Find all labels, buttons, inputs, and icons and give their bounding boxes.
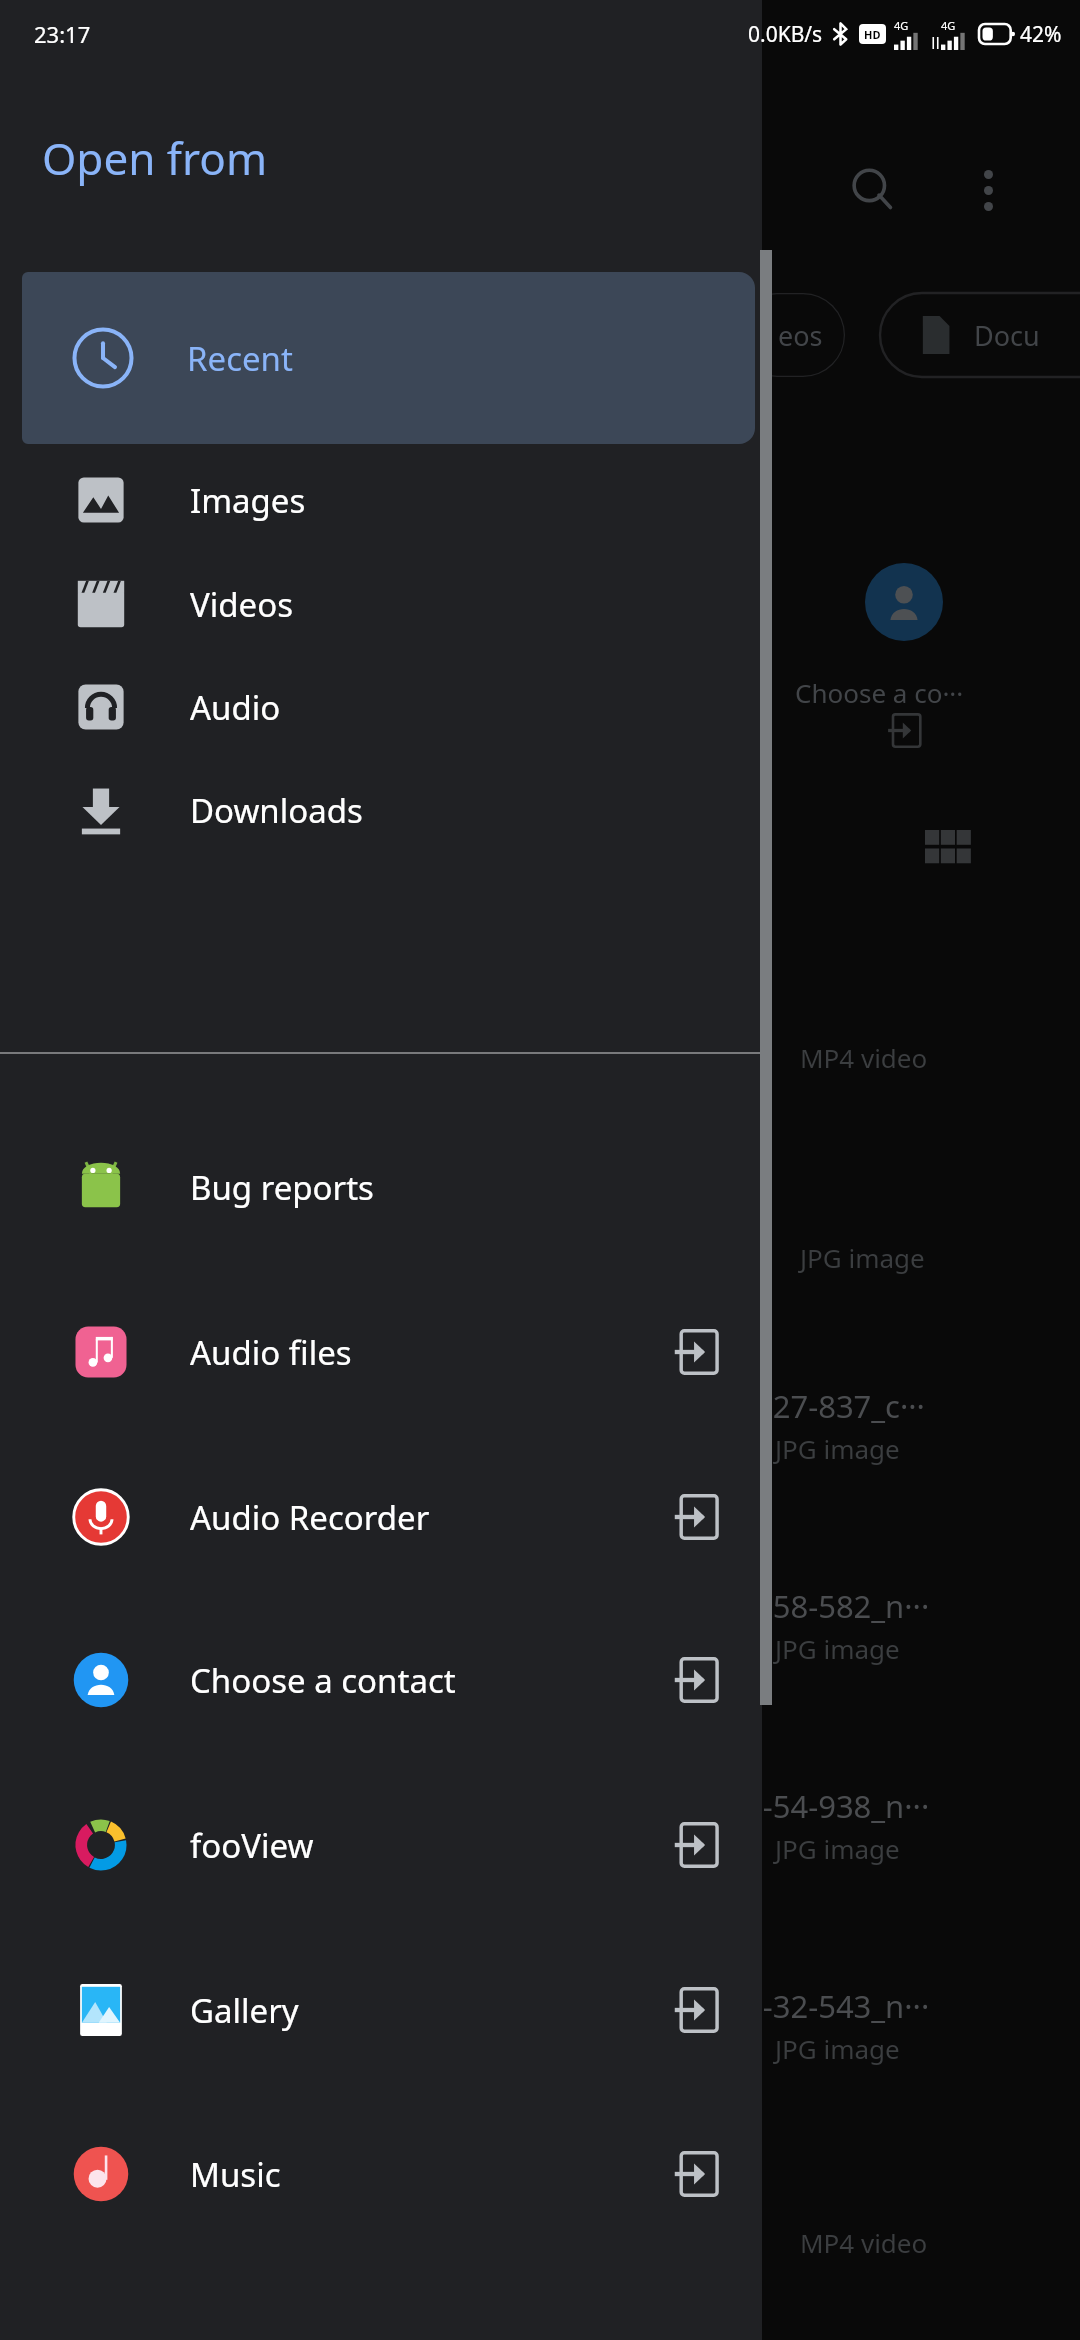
- staticText: Audio Recorder: [190, 1495, 430, 1540]
- staticText: 23:17: [34, 19, 91, 49]
- button[interactable]: Audio: [0, 655, 762, 759]
- staticText: MP4 video: [800, 2225, 928, 2260]
- staticText: Images: [190, 478, 306, 523]
- button[interactable]: Recent: [22, 272, 755, 444]
- staticText: Recent: [187, 336, 293, 381]
- staticText: Choose a co···: [795, 675, 964, 710]
- staticText: Music: [190, 2152, 281, 2197]
- button[interactable]: Audio files: [0, 1270, 762, 1434]
- button[interactable]: Gallery: [0, 1928, 762, 2092]
- button[interactable]: More options: [948, 150, 1028, 230]
- button[interactable]: Search: [833, 150, 913, 230]
- staticText: JPG image: [800, 1240, 925, 1275]
- staticText: JPG image: [775, 2031, 900, 2066]
- staticText: eos: [778, 317, 823, 354]
- staticText: 0.0KB/s: [748, 20, 823, 49]
- button[interactable]: Bug reports: [0, 1105, 762, 1269]
- staticText: Open from: [42, 128, 268, 188]
- staticText: HD: [864, 27, 881, 42]
- staticText: 4G: [941, 18, 956, 33]
- staticText: JPG image: [775, 1831, 900, 1866]
- button[interactable]: Docu: [880, 293, 1080, 377]
- staticText: 5-54-938_n···: [745, 1785, 930, 1827]
- staticText: Bug reports: [190, 1165, 374, 1210]
- staticText: Downloads: [190, 788, 363, 833]
- staticText: JPG image: [775, 1431, 900, 1466]
- staticText: Audio files: [190, 1330, 352, 1375]
- staticText: MP4 video: [800, 1040, 928, 1075]
- staticText: Gallery: [190, 1988, 299, 2033]
- staticText: fooView: [190, 1823, 314, 1868]
- button[interactable]: Downloads: [0, 758, 762, 862]
- button[interactable]: Audio Recorder: [0, 1435, 762, 1599]
- button[interactable]: fooView: [0, 1763, 762, 1927]
- button[interactable]: Choose a contact: [0, 1598, 762, 1762]
- staticText: Videos: [190, 582, 293, 627]
- staticText: Docu: [974, 317, 1040, 354]
- button[interactable]: Images: [0, 448, 762, 552]
- button[interactable]: Videos: [0, 552, 762, 656]
- button[interactable]: Music: [0, 2092, 762, 2256]
- staticText: Choose a contact: [190, 1658, 456, 1703]
- staticText: JPG image: [775, 1631, 900, 1666]
- staticText: 5-58-582_n···: [745, 1585, 930, 1627]
- staticText: 4G: [894, 18, 909, 33]
- button[interactable]: eos: [735, 293, 845, 377]
- staticText: 8-27-837_c···: [745, 1385, 925, 1427]
- staticText: 42%: [1020, 20, 1062, 49]
- staticText: 8-32-543_n···: [745, 1985, 930, 2027]
- staticText: Audio: [190, 685, 281, 730]
